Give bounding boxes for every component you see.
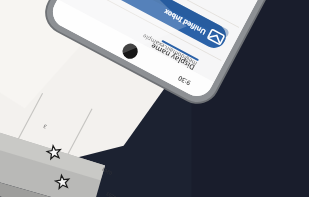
button[interactable]: Phone showing Unified Inbox account scre… — [0, 0, 309, 197]
